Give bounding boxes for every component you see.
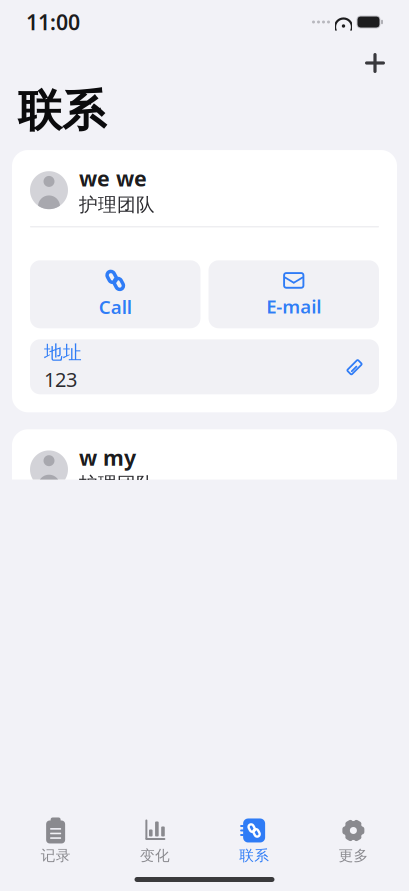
staticText: we we	[79, 164, 147, 192]
staticText: 123	[44, 366, 77, 393]
staticText: 联系	[18, 84, 106, 138]
button[interactable]: 更多	[304, 815, 403, 867]
staticText: 联系	[239, 846, 269, 864]
staticText: 更多	[338, 846, 368, 864]
button[interactable]: 记录	[6, 815, 105, 867]
staticText: Call	[99, 294, 132, 319]
staticText: 地址	[44, 341, 82, 364]
staticText: 变化	[140, 846, 170, 864]
staticText: 护理团队	[79, 473, 155, 495]
staticText: E-mail	[266, 294, 321, 319]
button[interactable]: 变化	[105, 815, 204, 867]
staticText: 记录	[41, 846, 71, 864]
staticText: 护理团队	[79, 193, 155, 216]
staticText: 11:00	[26, 8, 80, 36]
button[interactable]: E-mail	[208, 260, 379, 328]
staticText: w my	[79, 443, 136, 472]
button[interactable]: 联系	[204, 815, 304, 867]
button[interactable]: Add contact	[353, 44, 397, 82]
button[interactable]: 地址	[30, 339, 379, 394]
button[interactable]: Call	[30, 260, 200, 328]
